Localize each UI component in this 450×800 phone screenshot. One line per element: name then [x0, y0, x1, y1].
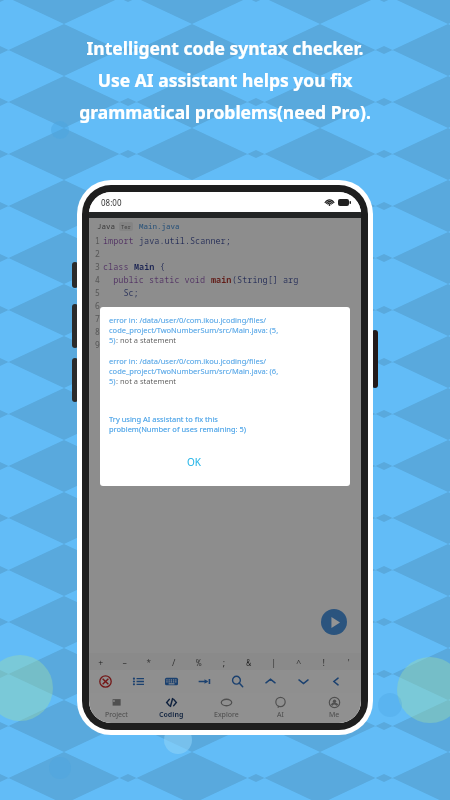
staticText: 1 — [95, 235, 100, 246]
button[interactable]: Back — [320, 670, 353, 693]
staticText: Java — [97, 221, 115, 231]
button[interactable]: Previous — [254, 670, 287, 693]
staticText: ! — [321, 656, 327, 668]
staticText: 5) — [109, 376, 116, 386]
button[interactable]: / — [161, 653, 186, 670]
staticText: | — [271, 656, 277, 668]
button[interactable]: Close — [89, 670, 122, 693]
staticText: Explore — [214, 710, 239, 720]
staticText: main — [211, 274, 232, 286]
button[interactable]: ^ — [286, 653, 311, 670]
button[interactable]: Search — [221, 670, 254, 693]
staticText: error in: /data/user/0/com.ikou.jcoding/… — [109, 315, 267, 325]
staticText: Sc; — [103, 287, 139, 299]
staticText: 4 — [95, 274, 100, 285]
button[interactable]: Me — [307, 693, 361, 723]
button[interactable]: Run — [321, 609, 347, 635]
staticText: + — [98, 656, 104, 668]
staticText: – — [122, 656, 128, 668]
staticText: ' — [346, 656, 352, 668]
staticText: 9 — [95, 339, 100, 350]
button[interactable]: Next — [287, 670, 320, 693]
button[interactable]: % — [186, 653, 211, 670]
button[interactable]: Coding — [144, 693, 199, 723]
button[interactable]: & — [236, 653, 261, 670]
button[interactable]: – — [113, 653, 137, 670]
staticText: 3 — [95, 261, 100, 272]
staticText: Project — [105, 710, 128, 720]
staticText: ^ — [296, 656, 302, 668]
staticText: grammatical problems(need Pro). — [20, 100, 430, 124]
staticText: Try using AI assistant to fix this — [109, 414, 218, 424]
staticText: Me — [329, 710, 340, 720]
staticText: class — [103, 261, 134, 273]
staticText: java.util.Scanner; — [139, 235, 231, 247]
staticText: AI — [277, 710, 284, 720]
button[interactable]: Project — [89, 693, 144, 723]
button[interactable]: | — [261, 653, 286, 670]
button[interactable]: * — [137, 653, 161, 670]
button[interactable]: Keyboard — [155, 670, 188, 693]
button[interactable]: Indent — [188, 670, 221, 693]
button[interactable]: ' — [336, 653, 361, 670]
staticText: & — [246, 656, 252, 668]
staticText: Intelligent code syntax checker. — [20, 36, 430, 60]
button[interactable]: OK — [175, 452, 213, 472]
button[interactable]: AI — [253, 693, 307, 723]
staticText: 5 — [95, 287, 100, 298]
staticText: : not a statement — [116, 376, 176, 386]
staticText: 8 — [95, 326, 100, 337]
staticText: ; — [221, 656, 227, 668]
staticText: { — [160, 261, 166, 273]
staticText: Coding — [159, 710, 184, 720]
staticText: error in: /data/user/0/com.ikou.jcoding/… — [109, 356, 267, 366]
staticText: 7 — [95, 313, 100, 324]
staticText: import — [103, 235, 139, 247]
staticText: problem(Number of uses remaining: 5) — [109, 424, 247, 434]
staticText: Ter — [121, 223, 131, 230]
staticText: 6 — [95, 300, 100, 311]
staticText: code_project/TwoNumberSum/src/Main.java:… — [109, 366, 279, 376]
staticText: 08:00 — [101, 197, 122, 208]
staticText: : not a statement — [116, 335, 176, 345]
staticText: code_project/TwoNumberSum/src/Main.java:… — [109, 325, 279, 335]
button[interactable]: + — [89, 653, 113, 670]
staticText: / — [171, 656, 177, 668]
staticText: OK — [187, 455, 201, 469]
button[interactable]: Explore — [199, 693, 253, 723]
staticText: public static void — [103, 274, 211, 286]
staticText: Main.java — [139, 221, 180, 231]
button[interactable]: List — [122, 670, 155, 693]
staticText: (String[] arg — [232, 274, 299, 286]
staticText: 5) — [109, 335, 116, 345]
staticText: * — [146, 656, 152, 668]
button[interactable]: ! — [311, 653, 336, 670]
staticText: Use AI assistant helps you fix — [20, 68, 430, 92]
staticText: % — [196, 656, 202, 668]
staticText: Main — [134, 261, 160, 273]
button[interactable]: ; — [211, 653, 236, 670]
staticText: 2 — [95, 248, 100, 259]
